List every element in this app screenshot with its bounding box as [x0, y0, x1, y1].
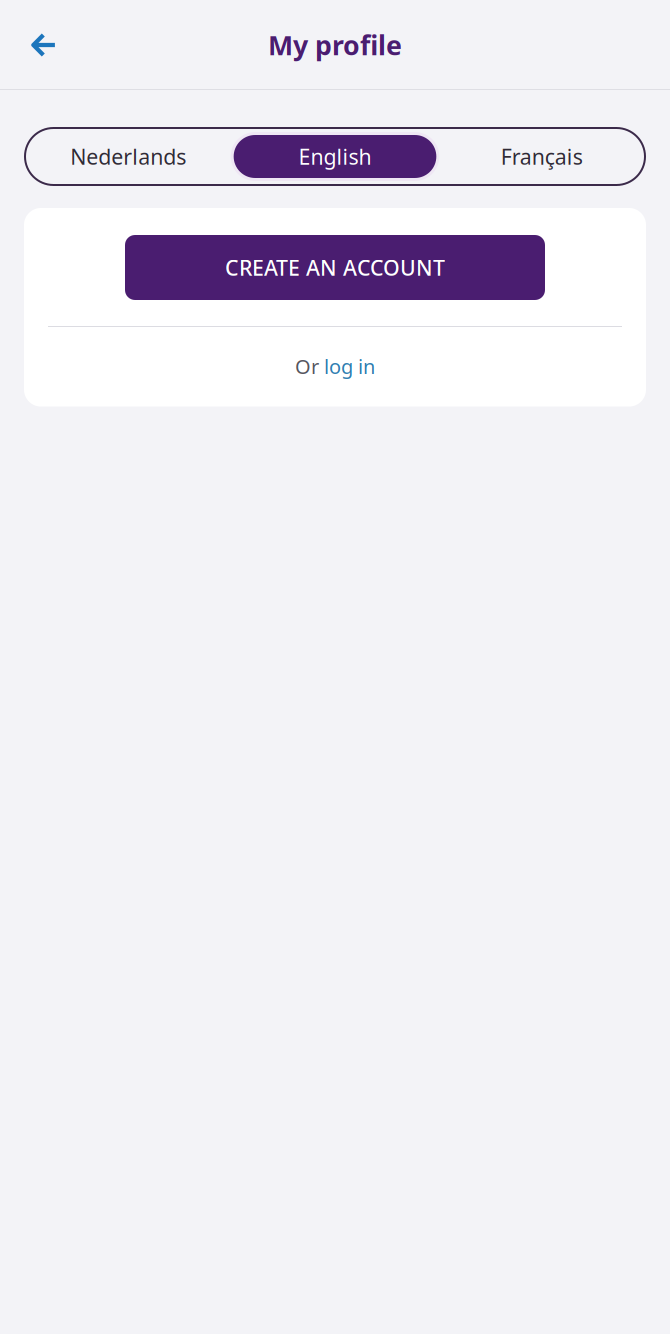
button[interactable]: Nederlands [25, 128, 232, 185]
button[interactable]: Français [438, 128, 645, 185]
staticText: log in [324, 353, 375, 380]
staticText: CREATE AN ACCOUNT [225, 253, 445, 282]
staticText: English [298, 142, 371, 171]
button[interactable]: CREATE AN ACCOUNT [125, 235, 545, 300]
staticText: Français [501, 142, 583, 171]
staticText: Or [295, 353, 324, 380]
staticText: My profile [268, 27, 402, 63]
button[interactable]: English [232, 128, 438, 185]
staticText: Nederlands [70, 142, 186, 171]
button[interactable]: Back [13, 15, 73, 75]
button[interactable]: log in [324, 353, 375, 380]
